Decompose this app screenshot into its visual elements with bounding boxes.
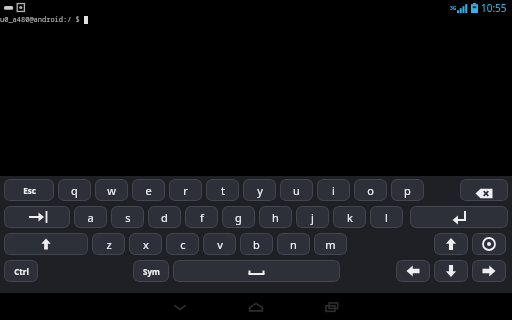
button[interactable]: g xyxy=(222,206,255,228)
button[interactable]: Back xyxy=(155,293,205,320)
staticText: q xyxy=(71,183,78,198)
staticText: u xyxy=(293,183,300,198)
staticText: a xyxy=(87,210,94,225)
button[interactable]: o xyxy=(354,179,387,201)
button[interactable]: u xyxy=(280,179,313,201)
staticText: p xyxy=(404,183,411,198)
staticText: s xyxy=(125,210,131,225)
staticText: n xyxy=(290,237,297,252)
button[interactable]: t xyxy=(206,179,239,201)
button[interactable]: d xyxy=(148,206,181,228)
button[interactable]: Down xyxy=(434,260,468,282)
staticText: i xyxy=(332,183,335,198)
button[interactable]: Shift xyxy=(4,233,88,255)
button[interactable]: m xyxy=(314,233,347,255)
staticText: Esc xyxy=(23,185,36,196)
staticText: j xyxy=(311,210,314,225)
button[interactable]: v xyxy=(203,233,236,255)
button[interactable]: Esc xyxy=(4,179,54,201)
staticText: d xyxy=(161,210,168,225)
button[interactable]: Tab xyxy=(4,206,70,228)
staticText: e xyxy=(145,183,152,198)
button[interactable]: Enter xyxy=(410,206,508,228)
staticText: x xyxy=(143,237,149,252)
button[interactable]: p xyxy=(391,179,424,201)
staticText: 3G xyxy=(450,5,457,12)
button[interactable]: y xyxy=(243,179,276,201)
button[interactable]: b xyxy=(240,233,273,255)
button[interactable]: n xyxy=(277,233,310,255)
staticText: c xyxy=(180,237,186,252)
button[interactable]: i xyxy=(317,179,350,201)
staticText: w xyxy=(107,183,116,198)
button[interactable]: Home xyxy=(231,293,281,320)
staticText: h xyxy=(272,210,279,225)
button[interactable]: a xyxy=(74,206,107,228)
button[interactable]: s xyxy=(111,206,144,228)
button[interactable]: c xyxy=(166,233,199,255)
staticText: y xyxy=(257,183,263,198)
staticText: 10:55 xyxy=(481,1,507,15)
button[interactable]: Settings xyxy=(472,233,506,255)
staticText: t xyxy=(221,183,225,198)
button[interactable]: Recents xyxy=(307,293,357,320)
button[interactable]: Space xyxy=(173,260,340,282)
button[interactable]: j xyxy=(296,206,329,228)
staticText: r xyxy=(183,183,188,198)
button[interactable]: k xyxy=(333,206,366,228)
staticText: Sym xyxy=(143,266,160,277)
staticText: m xyxy=(325,237,336,252)
staticText: f xyxy=(200,210,204,225)
button[interactable]: Right xyxy=(472,260,506,282)
staticText: v xyxy=(217,237,223,252)
staticText: Ctrl xyxy=(14,266,29,277)
button[interactable]: x xyxy=(129,233,162,255)
button[interactable]: Left xyxy=(396,260,430,282)
button[interactable]: Delete xyxy=(460,179,508,201)
staticText: g xyxy=(235,210,242,225)
button[interactable]: Ctrl xyxy=(4,260,38,282)
button[interactable]: Sym xyxy=(133,260,169,282)
button[interactable]: q xyxy=(58,179,91,201)
staticText: z xyxy=(106,237,112,252)
staticText: b xyxy=(253,237,260,252)
button[interactable]: l xyxy=(370,206,403,228)
staticText: l xyxy=(385,210,388,225)
staticText: k xyxy=(347,210,353,225)
button[interactable]: z xyxy=(92,233,125,255)
button[interactable]: e xyxy=(132,179,165,201)
button[interactable]: Up xyxy=(434,233,468,255)
button[interactable]: f xyxy=(185,206,218,228)
staticText: u0_a480@android:/ $ xyxy=(0,15,84,25)
staticText: o xyxy=(367,183,374,198)
button[interactable]: h xyxy=(259,206,292,228)
button[interactable]: w xyxy=(95,179,128,201)
button[interactable]: r xyxy=(169,179,202,201)
